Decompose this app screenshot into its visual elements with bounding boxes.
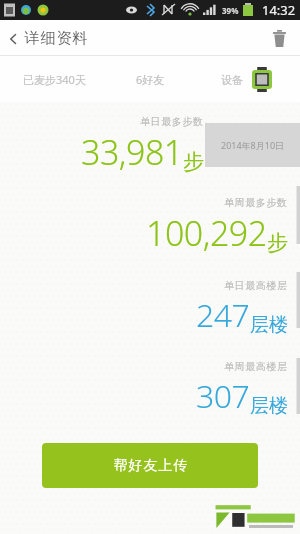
- staticText: 6好友: [136, 72, 165, 87]
- staticText: 层楼: [250, 313, 288, 337]
- staticText: 设备: [221, 73, 243, 87]
- staticText: 步: [183, 149, 204, 175]
- staticText: 详细资料: [24, 29, 88, 48]
- button[interactable]: Delete: [266, 25, 292, 51]
- staticText: 步: [267, 230, 288, 256]
- staticText: 14:32: [262, 1, 296, 19]
- staticText: 39%: [222, 5, 239, 16]
- button[interactable]: 详细资料: [6, 29, 88, 48]
- staticText: 帮好友上传: [113, 457, 188, 475]
- staticText: 单日最高楼层: [224, 279, 288, 292]
- button[interactable]: 设备: [192, 56, 300, 102]
- staticText: 单周最高楼层: [224, 360, 288, 373]
- staticText: 已麦步340天: [23, 72, 86, 87]
- button[interactable]: 已麦步340天: [0, 56, 108, 102]
- staticText: 单日最多步数: [140, 115, 204, 128]
- staticText: 层楼: [250, 394, 288, 418]
- staticText: 247: [196, 293, 250, 337]
- staticText: 33,981: [81, 129, 183, 175]
- staticText: 307: [196, 374, 250, 418]
- staticText: 单周最多步数: [224, 196, 288, 209]
- staticText: 2014年8月10日: [221, 139, 285, 151]
- button[interactable]: 帮好友上传: [42, 443, 258, 488]
- button[interactable]: 6好友: [108, 56, 192, 102]
- staticText: 100,292: [146, 210, 267, 256]
